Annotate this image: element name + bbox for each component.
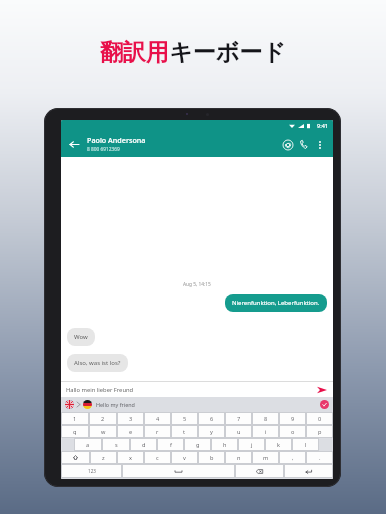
button[interactable]: 123	[61, 464, 122, 478]
staticText: k	[277, 441, 280, 449]
button[interactable]: 4	[144, 412, 171, 425]
button[interactable]: ,	[279, 451, 306, 464]
button[interactable]: 9	[279, 412, 306, 425]
button[interactable]: r	[144, 425, 171, 438]
staticText: h	[223, 441, 227, 449]
staticText: 8 800 6912369	[87, 146, 120, 153]
button[interactable]: Space	[122, 464, 235, 478]
button[interactable]: h	[211, 438, 238, 451]
button[interactable]: n	[225, 451, 252, 464]
staticText: e	[129, 428, 133, 436]
button[interactable]: Backspace	[235, 464, 284, 478]
staticText: Aug 5, 14:15	[183, 281, 211, 288]
button[interactable]: o	[279, 425, 306, 438]
button[interactable]: Send	[315, 383, 328, 396]
staticText: q	[73, 428, 77, 436]
button[interactable]: 5	[171, 412, 198, 425]
staticText: u	[237, 428, 241, 436]
button[interactable]: Hallo mein lieber Freund	[66, 386, 315, 394]
button[interactable]: m	[252, 451, 279, 464]
button[interactable]: Paolo Andersona	[87, 135, 280, 153]
button[interactable]: u	[225, 425, 252, 438]
staticText: l	[305, 441, 307, 449]
button[interactable]: Confirm translation	[320, 400, 329, 409]
staticText: d	[142, 441, 146, 449]
button[interactable]: .	[306, 451, 333, 464]
button[interactable]: Target language German	[83, 400, 92, 409]
button[interactable]: Nierenfunktion, Leberfunktion.	[225, 294, 327, 312]
staticText: 9:41	[317, 122, 328, 129]
staticText: 翻訳用	[100, 38, 169, 67]
staticText: 9	[291, 415, 295, 423]
button[interactable]: p	[306, 425, 333, 438]
button[interactable]: 1	[61, 412, 89, 425]
button[interactable]: Translate	[280, 137, 295, 152]
staticText: s	[115, 441, 118, 449]
button[interactable]: More options	[313, 138, 326, 151]
button[interactable]: f	[157, 438, 184, 451]
staticText: Wow	[74, 333, 88, 341]
button[interactable]: j	[238, 438, 265, 451]
button[interactable]: b	[198, 451, 225, 464]
staticText: Hello my friend	[96, 401, 135, 408]
button[interactable]: x	[117, 451, 144, 464]
button[interactable]: 0	[306, 412, 333, 425]
staticText: Nierenfunktion, Leberfunktion.	[232, 299, 320, 307]
staticText: Paolo Andersona	[87, 135, 146, 145]
button[interactable]: s	[102, 438, 130, 451]
staticText: a	[86, 441, 90, 449]
button[interactable]: 7	[225, 412, 252, 425]
staticText: 1	[73, 415, 77, 423]
staticText: .	[319, 454, 321, 462]
staticText: 4	[156, 415, 160, 423]
button[interactable]: e	[117, 425, 144, 438]
button[interactable]: Back	[68, 138, 81, 151]
button[interactable]: t	[171, 425, 198, 438]
button[interactable]: Call	[297, 137, 312, 152]
button[interactable]: a	[74, 438, 102, 451]
staticText: y	[210, 428, 213, 436]
staticText: Also, was ist los?	[74, 359, 121, 367]
staticText: 2	[101, 415, 105, 423]
staticText: 6	[210, 415, 214, 423]
staticText: ,	[292, 454, 294, 462]
button[interactable]: g	[184, 438, 211, 451]
staticText: b	[210, 454, 214, 462]
button[interactable]: Also, was ist los?	[67, 354, 128, 372]
staticText: n	[237, 454, 241, 462]
button[interactable]: i	[252, 425, 279, 438]
button[interactable]: 3	[117, 412, 144, 425]
staticText: 123	[88, 468, 96, 474]
staticText: 0	[318, 415, 322, 423]
button[interactable]: k	[265, 438, 292, 451]
button[interactable]: Wow	[67, 328, 95, 346]
button[interactable]: Source language English	[65, 400, 74, 409]
button[interactable]: 8	[252, 412, 279, 425]
staticText: 3	[129, 415, 133, 423]
button[interactable]: l	[292, 438, 319, 451]
staticText: g	[196, 441, 200, 449]
button[interactable]: Hello my friend	[96, 401, 320, 408]
staticText: f	[170, 441, 172, 449]
button[interactable]: w	[89, 425, 117, 438]
staticText: i	[265, 428, 267, 436]
staticText: o	[291, 428, 295, 436]
staticText: キーボード	[169, 38, 286, 67]
button[interactable]: 2	[89, 412, 117, 425]
button[interactable]: v	[171, 451, 198, 464]
staticText: v	[183, 454, 186, 462]
staticText: 5	[183, 415, 187, 423]
staticText: m	[263, 454, 269, 462]
button[interactable]: Enter	[284, 464, 333, 478]
button[interactable]: Shift	[61, 451, 90, 464]
button[interactable]: c	[144, 451, 171, 464]
staticText: w	[101, 428, 106, 436]
button[interactable]: 6	[198, 412, 225, 425]
staticText: r	[156, 428, 159, 436]
staticText: t	[183, 428, 186, 436]
button[interactable]: d	[130, 438, 157, 451]
staticText: x	[129, 454, 132, 462]
button[interactable]: z	[90, 451, 117, 464]
button[interactable]: y	[198, 425, 225, 438]
button[interactable]: q	[61, 425, 89, 438]
